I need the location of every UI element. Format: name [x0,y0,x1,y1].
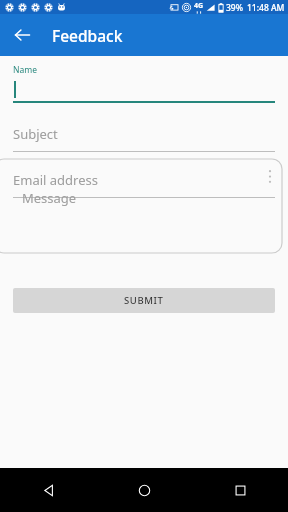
staticText: 4G [194,1,204,11]
staticText: Feedback [52,25,123,46]
staticText: 11:48 AM [247,2,285,14]
button[interactable]: Email address [13,168,275,198]
staticText: 39% [226,2,243,14]
staticText: Subject [13,125,58,143]
button[interactable]: Recent apps [192,468,288,512]
staticText: Message [22,189,77,207]
button[interactable]: Home [96,468,192,512]
button[interactable]: Back [6,19,38,51]
button[interactable]: SUBMIT [13,288,275,313]
staticText: SUBMIT [124,294,164,307]
button[interactable]: Message [0,159,282,253]
staticText: Name [13,64,37,76]
button[interactable]: Name [13,64,275,104]
staticText: Email address [13,171,98,189]
button[interactable]: Subject [13,122,275,152]
button[interactable]: Back [0,468,96,512]
